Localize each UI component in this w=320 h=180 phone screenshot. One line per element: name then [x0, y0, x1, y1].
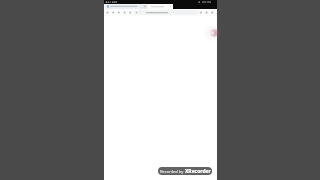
button[interactable]: Extensions: [199, 9, 205, 16]
button[interactable]: Profile: [205, 9, 211, 16]
button[interactable]: Recorded by screen recorder: [158, 167, 212, 175]
staticText: Recorded by: [160, 169, 185, 174]
button[interactable]: Back: [104, 9, 110, 16]
button[interactable]: Bookmark: [128, 9, 134, 16]
button[interactable]: Home: [122, 9, 128, 16]
button[interactable]: Reload: [116, 9, 122, 16]
button[interactable]: More options: [211, 9, 217, 16]
staticText: XRecorder: [185, 168, 211, 175]
button[interactable]: Address and search bar: [134, 9, 198, 16]
button[interactable]: Tabs: [104, 4, 173, 9]
button[interactable]: Forward: [110, 9, 116, 16]
button[interactable]: Status bar: [104, 0, 217, 4]
